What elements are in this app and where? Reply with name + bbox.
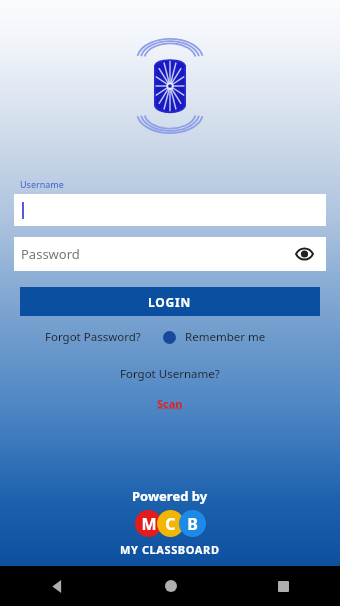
staticText: Forgot Username? — [120, 366, 220, 382]
button[interactable]: Recent apps — [227, 566, 340, 606]
staticText: B — [187, 513, 198, 535]
staticText: LOGIN — [148, 294, 192, 310]
staticText: Forgot Password? — [45, 329, 141, 345]
button[interactable]: Remember me — [163, 329, 266, 345]
staticText: Remember me — [185, 329, 266, 345]
button[interactable]: Password — [14, 237, 326, 271]
staticText: Scan — [157, 396, 183, 411]
staticText: MY CLASSBOARD — [120, 542, 220, 557]
staticText: C — [165, 513, 176, 535]
button[interactable]: Home — [114, 566, 227, 606]
staticText: Powered by — [132, 487, 208, 505]
staticText: M — [141, 513, 157, 535]
button[interactable]: Forgot Username? — [120, 366, 220, 382]
staticText: Password — [21, 245, 80, 263]
button[interactable]: LOGIN — [20, 287, 320, 316]
button[interactable]: Scan — [157, 396, 183, 411]
button[interactable]: Back — [0, 566, 114, 606]
button[interactable] — [14, 194, 326, 226]
button[interactable]: Show password — [292, 242, 316, 266]
button[interactable]: Forgot Password? — [45, 329, 141, 345]
staticText: Username — [20, 178, 64, 190]
